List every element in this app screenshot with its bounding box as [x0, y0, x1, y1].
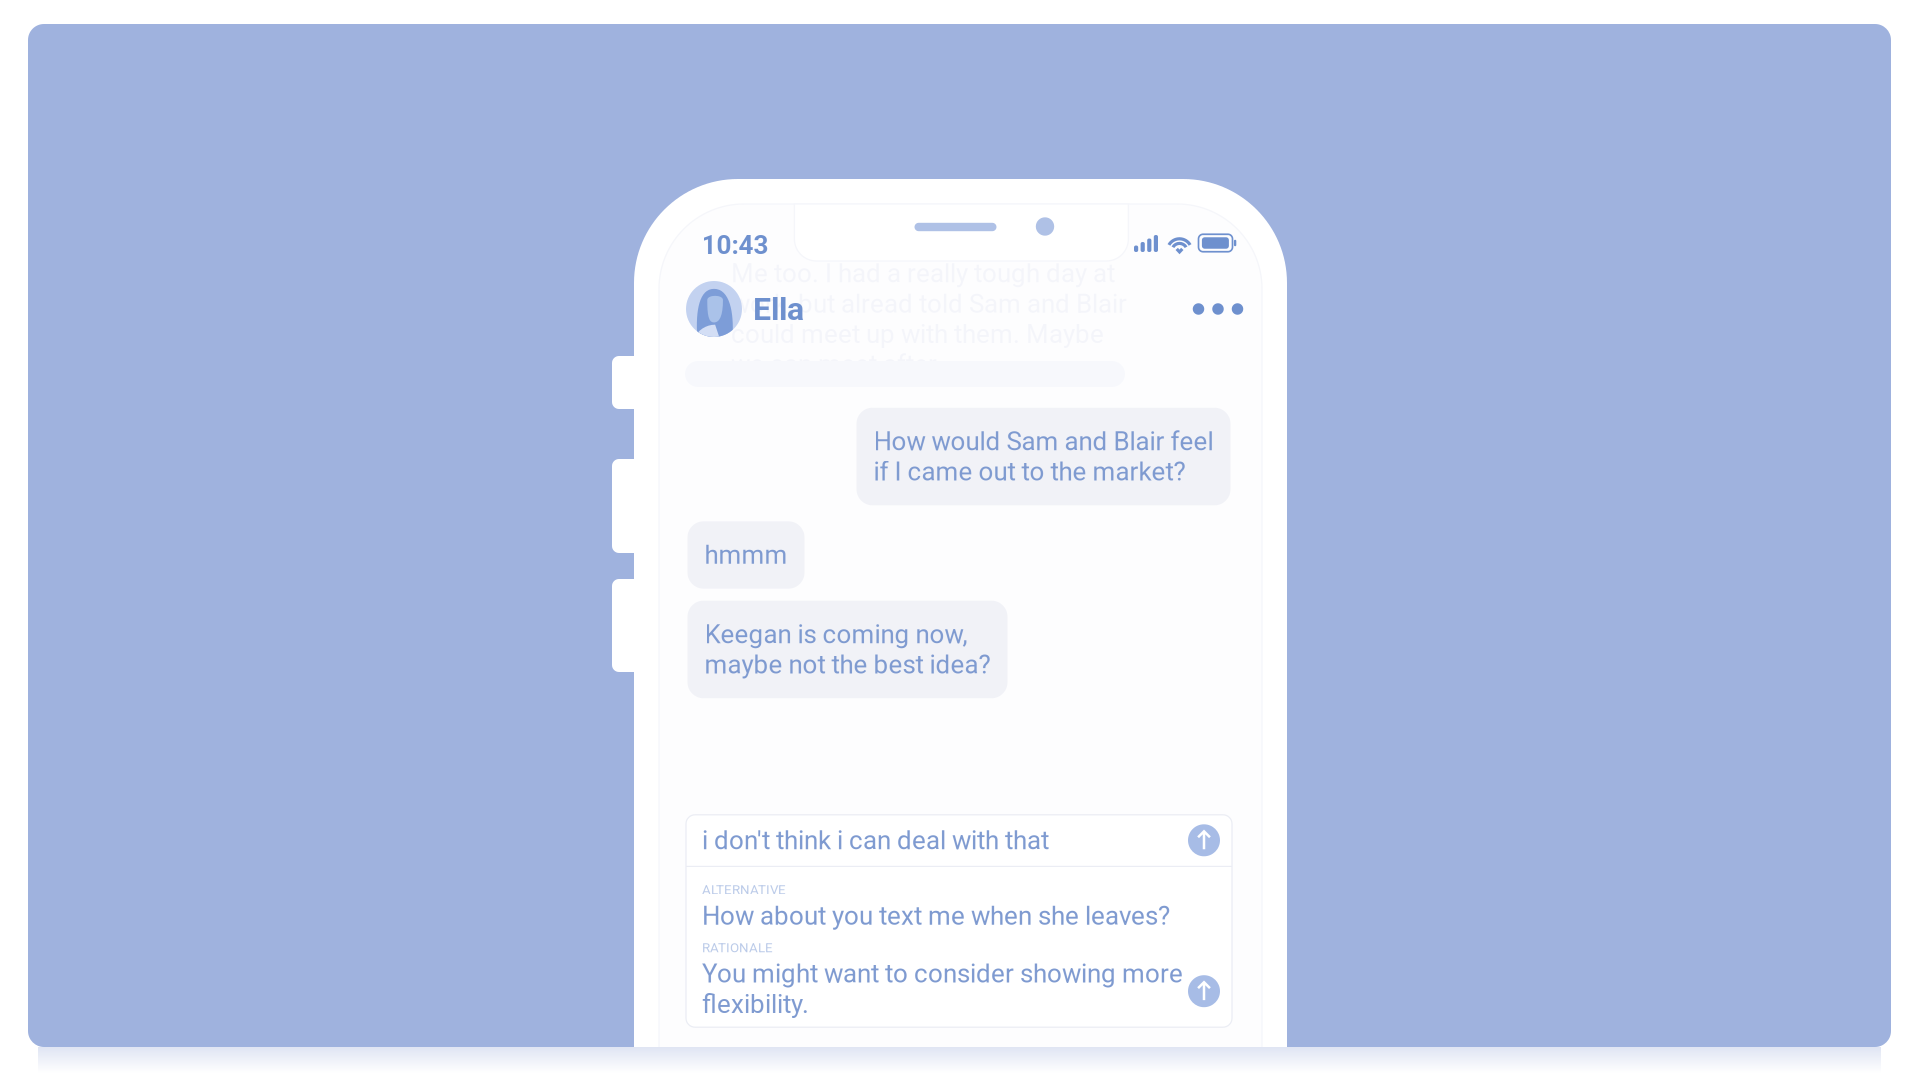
staticText: work, but alread told Sam and Blair	[731, 289, 1127, 319]
staticText: ALTERNATIVE	[702, 882, 786, 898]
staticText: RATIONALE	[702, 940, 773, 955]
staticText: hmmm	[704, 540, 787, 570]
staticText: Keegan is coming now,	[704, 619, 967, 649]
staticText: You might want to consider showing more	[702, 959, 1183, 989]
staticText: flexibility.	[702, 989, 809, 1019]
button[interactable]: Ella	[686, 278, 946, 340]
staticText: could meet up with them. Maybe	[731, 319, 1104, 349]
staticText: i don't think i can deal with that	[702, 825, 1049, 855]
staticText: Me too. I had a really tough day at	[731, 258, 1115, 289]
staticText: 10:43	[701, 230, 768, 260]
button[interactable]: Use suggestion	[1188, 975, 1232, 1027]
staticText: How would Sam and Blair feel	[873, 426, 1213, 456]
staticText: Ella	[753, 290, 804, 328]
staticText: maybe not the best idea?	[704, 649, 990, 680]
button[interactable]: i don't think i can deal with that	[686, 815, 1232, 866]
staticText: if I came out to the market?	[873, 456, 1185, 487]
button[interactable]: More options	[1180, 285, 1256, 333]
staticText: How about you text me when she leaves?	[702, 901, 1170, 931]
